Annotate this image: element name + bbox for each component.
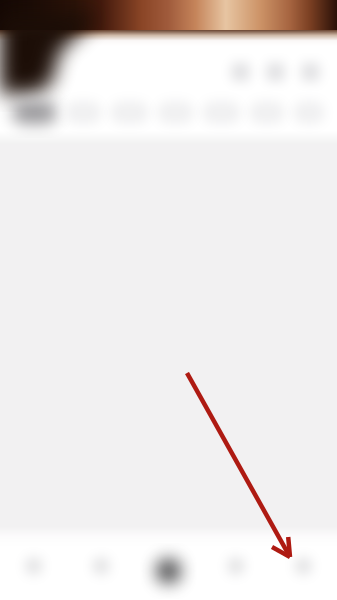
button[interactable]: Filter [12, 101, 57, 124]
button[interactable]: Tab [0, 540, 67, 600]
button[interactable]: Action [293, 58, 328, 86]
button[interactable]: Filter [157, 101, 194, 124]
button[interactable]: Tab [270, 540, 337, 600]
button[interactable]: Filter [202, 101, 241, 124]
button[interactable]: Action [258, 58, 293, 86]
button[interactable]: Filter [293, 101, 325, 124]
button[interactable]: Tab [67, 540, 135, 600]
button[interactable]: Action [223, 58, 258, 86]
button[interactable]: Tab [135, 540, 202, 600]
button[interactable]: Filter [249, 101, 285, 124]
button[interactable]: Filter [110, 101, 149, 124]
button[interactable]: Tab [202, 540, 270, 600]
